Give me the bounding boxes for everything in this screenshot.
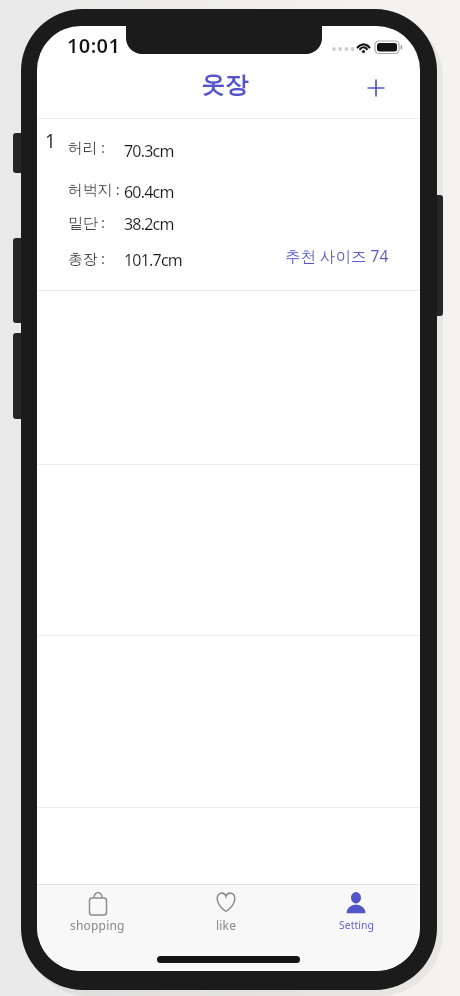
staticText: Setting — [339, 918, 374, 932]
staticText: 밑단 : — [68, 212, 105, 232]
staticText: 10:01 — [67, 32, 121, 59]
staticText: 70.3cm — [124, 140, 174, 162]
staticText: 허벅지 : — [68, 179, 120, 199]
button[interactable] — [359, 71, 393, 105]
staticText: shopping — [70, 917, 125, 933]
button[interactable]: 추천 사이즈 74 — [285, 245, 389, 266]
button[interactable]: Setting — [292, 884, 420, 971]
staticText: 38.2cm — [124, 213, 174, 235]
staticText: 추천 사이즈 74 — [285, 245, 389, 266]
button[interactable]: like — [164, 884, 292, 971]
staticText: 총장 : — [68, 248, 105, 268]
button[interactable]: 1 — [37, 119, 420, 290]
staticText: 허리 : — [68, 137, 105, 157]
staticText: like — [216, 917, 237, 933]
staticText: 1 — [45, 128, 56, 154]
button[interactable]: shopping — [37, 884, 164, 971]
staticText: 101.7cm — [124, 249, 182, 271]
staticText: 60.4cm — [124, 181, 174, 203]
staticText: 옷장 — [201, 70, 248, 100]
